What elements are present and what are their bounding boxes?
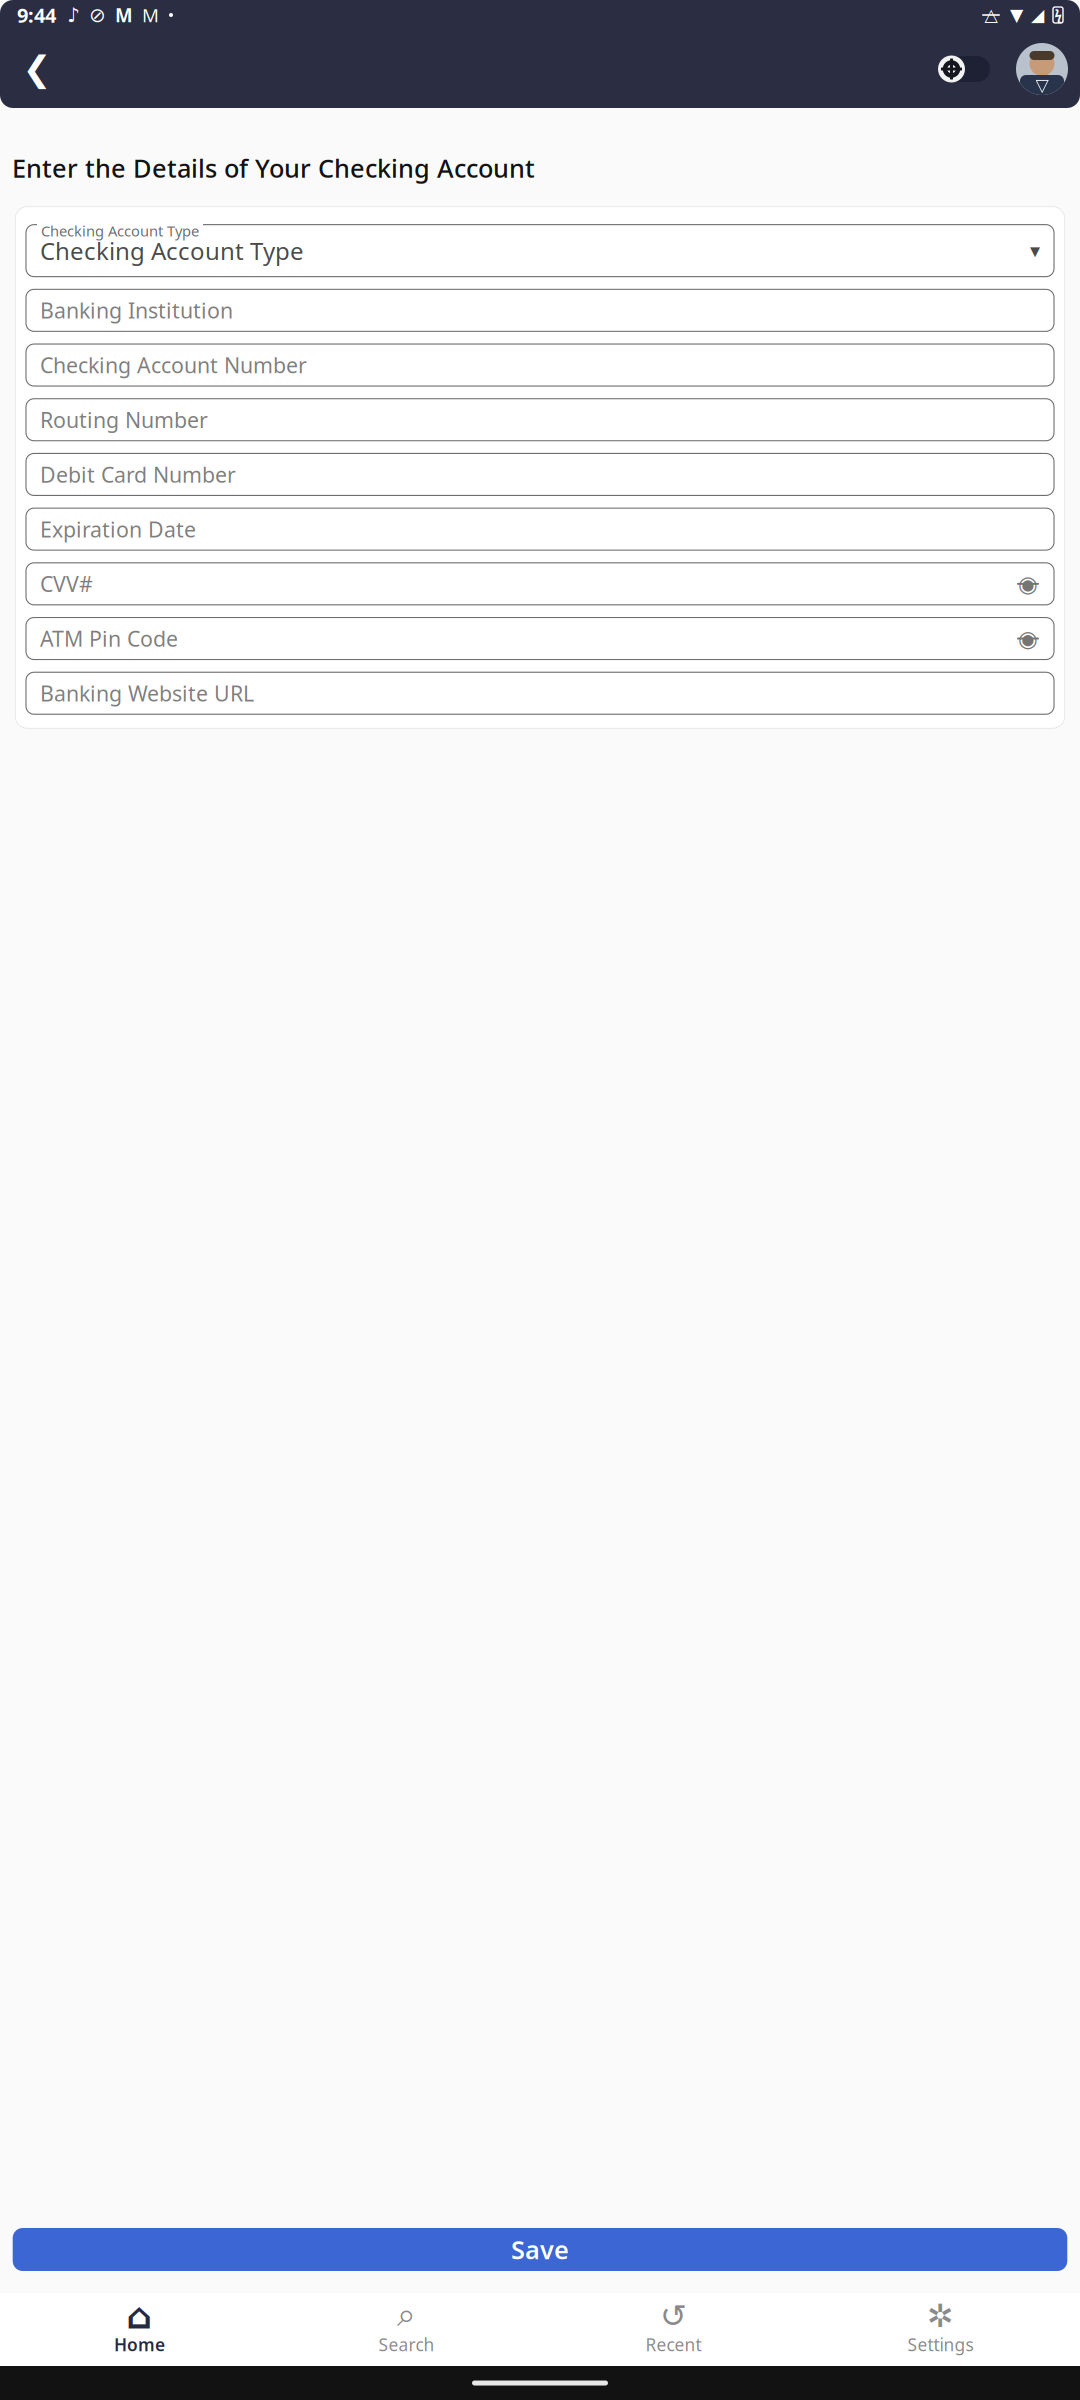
staticText: ❮ <box>22 49 51 89</box>
staticText: ϟ <box>1054 6 1061 24</box>
staticText: 9:44 <box>17 2 56 28</box>
button[interactable]: Checking Account Type <box>26 218 1054 277</box>
button[interactable]: Banking Institution <box>26 289 1054 331</box>
staticText: Checking Account Number <box>40 351 307 379</box>
staticText: Checking Account Type <box>41 221 199 241</box>
staticText: ⌂ <box>126 2296 152 2336</box>
staticText: ▽ <box>1035 75 1048 95</box>
button[interactable]: ⌕ <box>273 2295 540 2364</box>
staticText: Save <box>511 2233 569 2266</box>
button[interactable]: ATM Pin Code <box>26 617 1054 659</box>
staticText: M <box>142 3 159 27</box>
button[interactable]: Back <box>12 44 62 94</box>
staticText: ▾ <box>1030 239 1040 262</box>
staticText: Recent <box>645 2333 701 2356</box>
staticText: ▼ <box>1010 5 1023 25</box>
staticText: Home <box>114 2333 165 2356</box>
staticText: ⌕ <box>397 2300 416 2332</box>
staticText: △ <box>984 5 997 25</box>
staticText: Expiration Date <box>40 515 196 543</box>
button[interactable]: ↺ <box>540 2295 807 2364</box>
button[interactable]: Routing Number <box>26 399 1054 441</box>
button[interactable]: Checking Account Number <box>26 344 1054 386</box>
staticText: Routing Number <box>40 406 208 434</box>
staticText: Settings <box>907 2333 973 2356</box>
staticText: Search <box>378 2333 434 2356</box>
button[interactable]: ⌂ <box>6 2295 273 2364</box>
staticText: ◉ <box>1018 571 1038 597</box>
button[interactable]: Toggle light and dark theme <box>938 55 990 82</box>
button[interactable]: Debit Card Number <box>26 453 1054 495</box>
staticText: ♪ <box>67 4 80 26</box>
staticText: Banking Website URL <box>40 679 254 707</box>
staticText: ATM Pin Code <box>40 624 178 653</box>
button[interactable]: ✲ <box>807 2295 1074 2364</box>
button[interactable]: Expiration Date <box>26 508 1054 550</box>
staticText: ◉ <box>1018 626 1038 651</box>
button[interactable]: Banking Website URL <box>26 672 1054 714</box>
staticText: Enter the Details of Your Checking Accou… <box>12 151 535 185</box>
staticText: M <box>115 3 133 27</box>
staticText: CVV# <box>40 570 93 598</box>
staticText: ↺ <box>660 2298 687 2334</box>
button[interactable]: CVV# <box>26 563 1054 605</box>
staticText: Debit Card Number <box>40 460 236 489</box>
staticText: Banking Institution <box>40 296 233 324</box>
staticText: ⊘ <box>89 4 106 26</box>
staticText: ◢ <box>1031 5 1044 25</box>
button[interactable]: Save <box>13 2228 1067 2271</box>
staticText: Checking Account Type <box>40 235 304 267</box>
button[interactable]: Profile <box>1016 43 1068 95</box>
staticText: ✲ <box>927 2298 954 2334</box>
